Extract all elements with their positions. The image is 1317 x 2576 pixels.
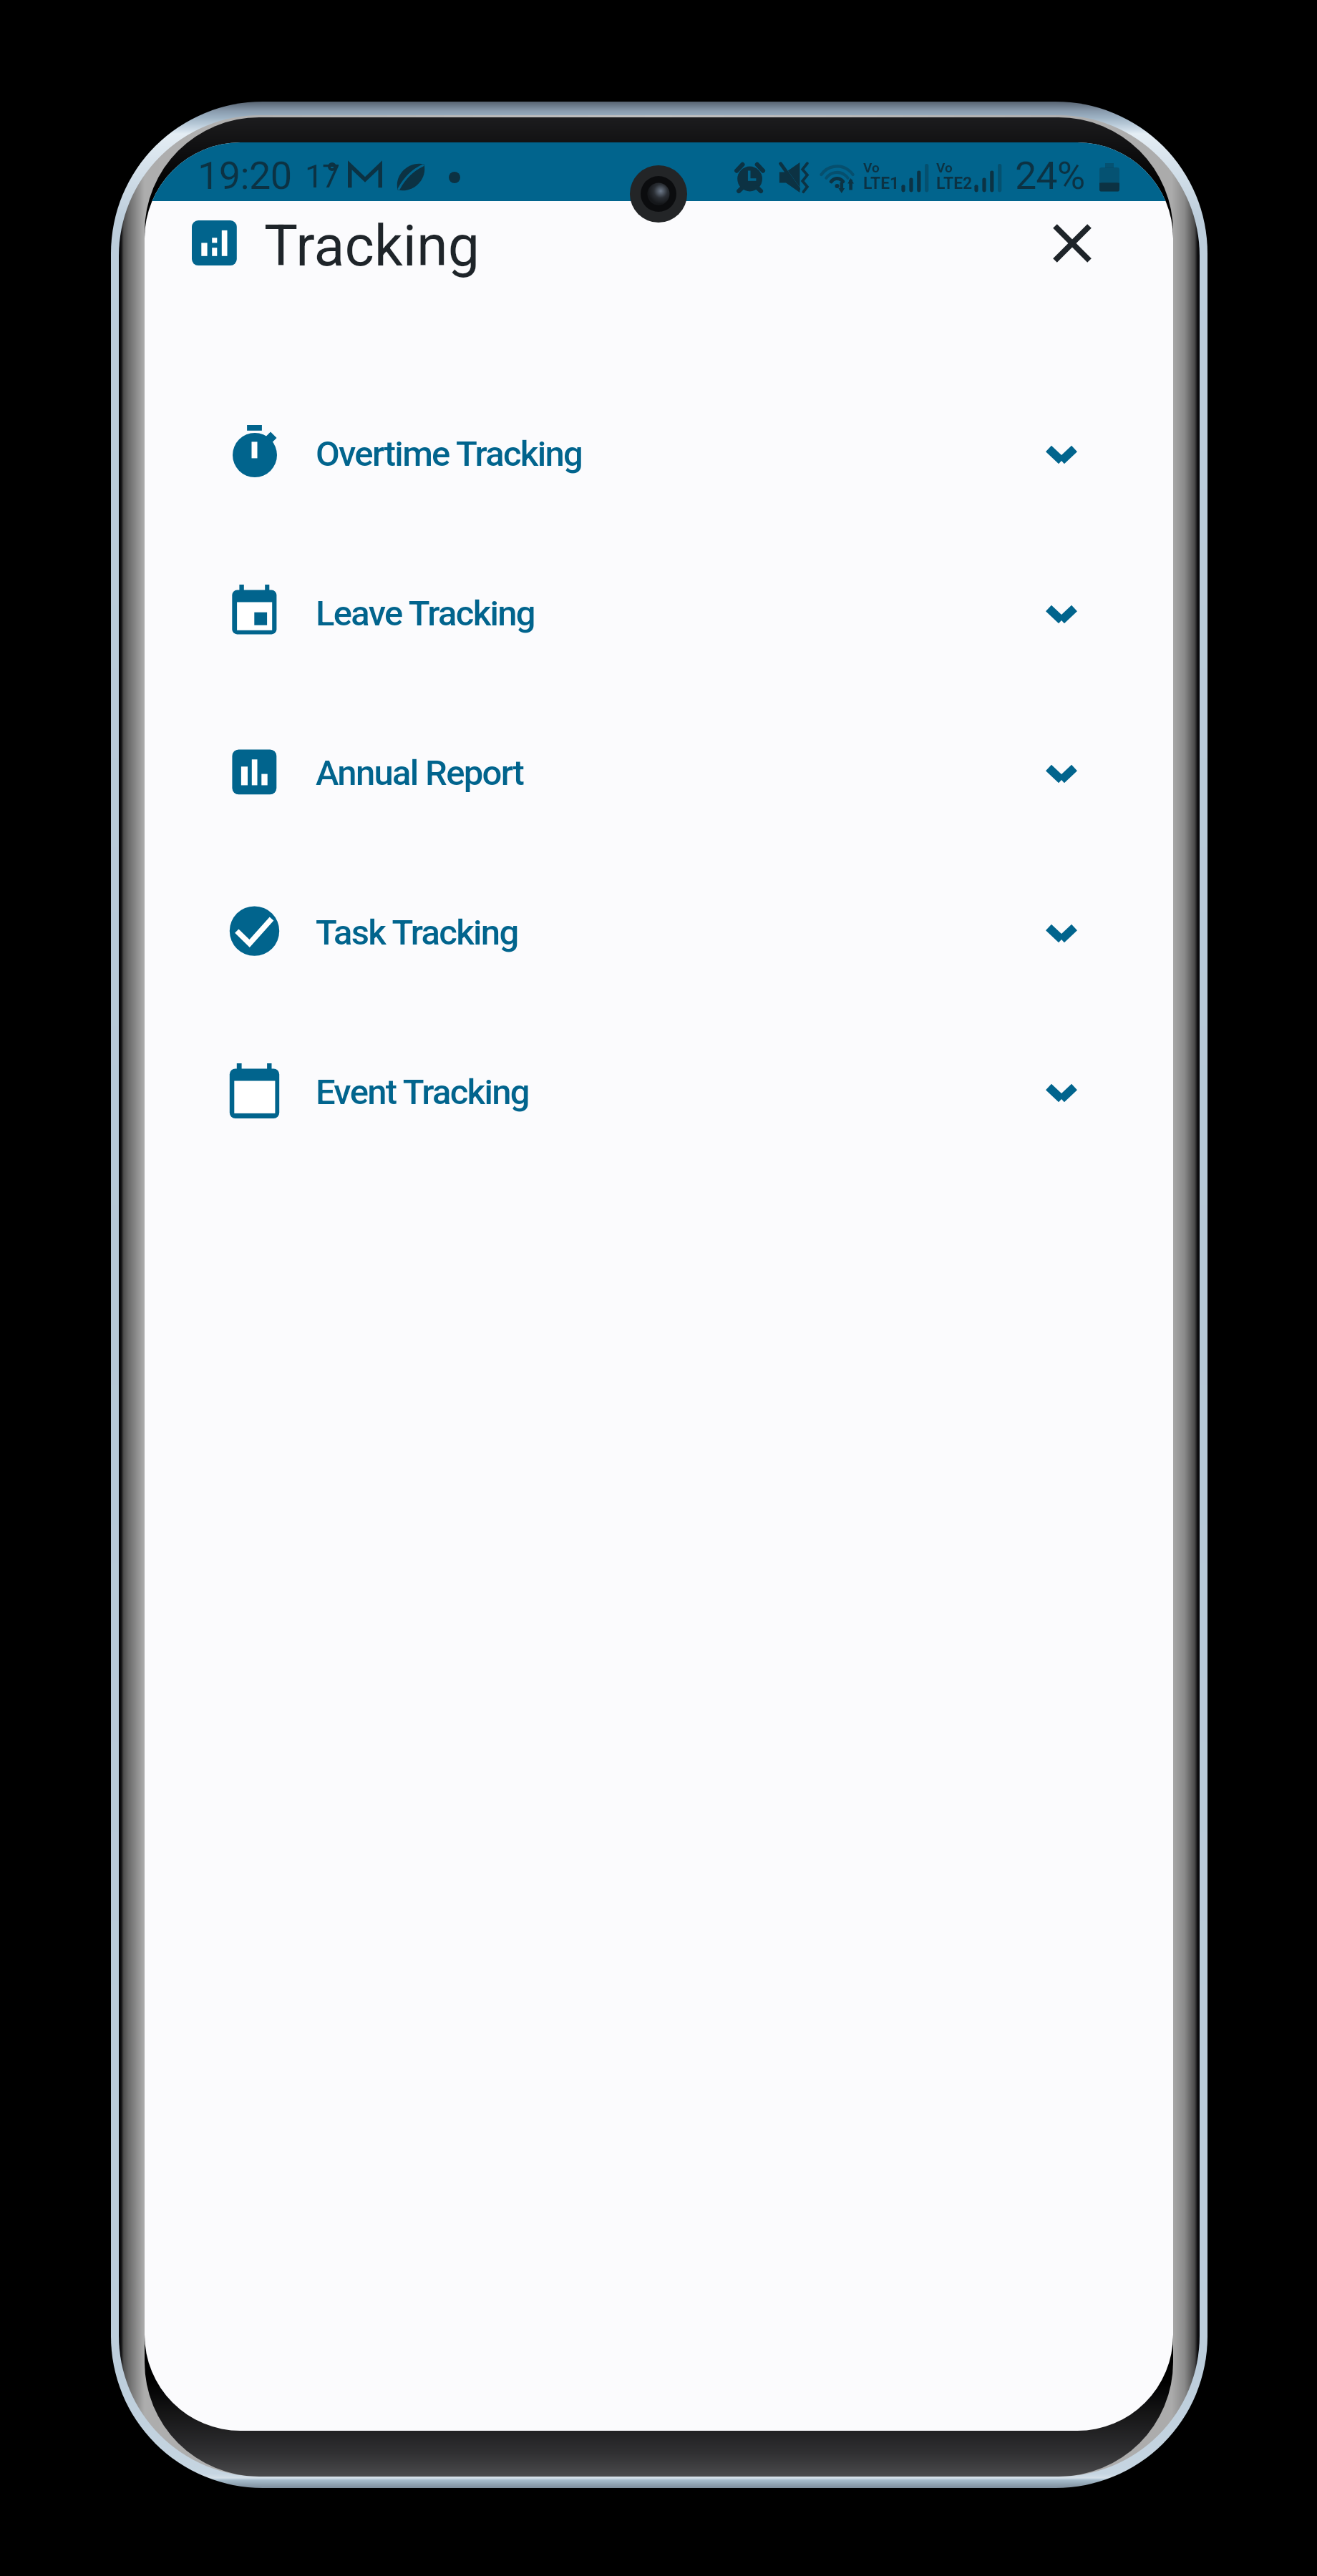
staticText: Event Tracking (316, 1072, 529, 1113)
button[interactable]: Close (1031, 202, 1114, 285)
staticText: LTE2 (936, 174, 973, 193)
staticText: 19:20 (198, 153, 292, 198)
staticText: Overtime Tracking (316, 434, 583, 474)
staticText: 17 (305, 157, 339, 195)
staticText: Annual Report (316, 753, 524, 794)
staticText: 24% (1015, 153, 1085, 198)
button[interactable]: Event Tracking (145, 1048, 1173, 1136)
staticText: LTE1 (863, 174, 900, 193)
staticText: Vo (863, 160, 880, 175)
staticText: Leave Tracking (316, 593, 535, 634)
button[interactable]: Leave Tracking (145, 570, 1173, 657)
button[interactable]: Overtime Tracking (145, 410, 1173, 497)
button[interactable]: Task Tracking (145, 889, 1173, 976)
staticText: Task Tracking (316, 912, 518, 953)
staticText: Vo (936, 160, 953, 175)
staticText: Tracking (264, 213, 480, 280)
button[interactable]: Annual Report (145, 729, 1173, 816)
